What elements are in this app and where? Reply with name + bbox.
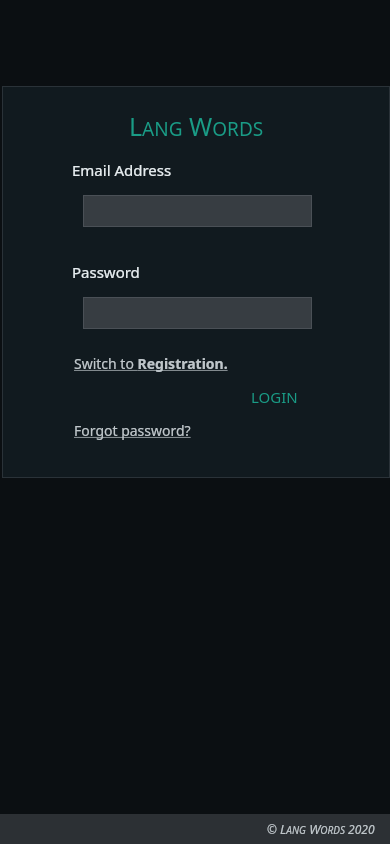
- button[interactable]: Forgot password?: [74, 421, 191, 440]
- staticText: Email Address: [72, 160, 172, 180]
- button[interactable]: LOGIN: [245, 384, 304, 410]
- staticText: LOGIN: [251, 387, 298, 407]
- button[interactable]: Email address input: [83, 195, 312, 227]
- staticText: © LANG WORDS 2020: [267, 820, 375, 838]
- staticText: Switch to Registration.: [74, 354, 228, 373]
- staticText: Password: [72, 262, 140, 282]
- staticText: Forgot password?: [74, 421, 191, 440]
- button[interactable]: Password input: [83, 297, 312, 329]
- button[interactable]: Switch to Registration.: [74, 354, 228, 373]
- staticText: LANG WORDS: [129, 109, 264, 143]
